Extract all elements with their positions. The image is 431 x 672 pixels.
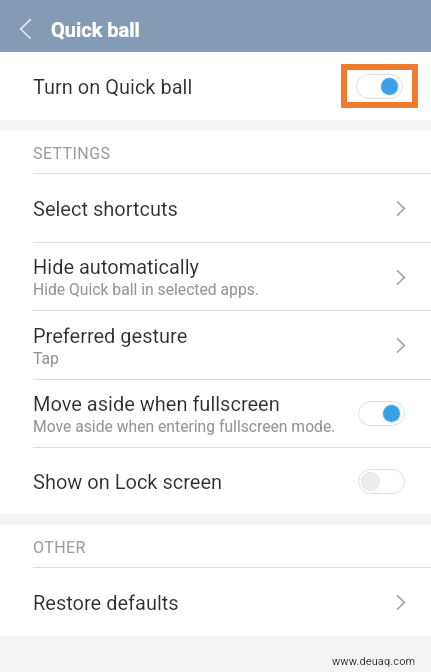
staticText: Tap: [33, 349, 59, 367]
button[interactable]: Toggle on: [356, 74, 403, 99]
staticText: Turn on Quick ball: [33, 75, 341, 98]
button[interactable]: Select shortcuts: [0, 174, 431, 242]
staticText: Preferred gesture: [33, 324, 188, 347]
button[interactable]: Show on Lock screen: [0, 448, 431, 514]
staticText: Move aside when entering fullscreen mode…: [33, 417, 336, 435]
button[interactable]: Move aside when fullscreen: [0, 380, 431, 447]
button[interactable]: Hide automatically: [0, 243, 431, 310]
button[interactable]: Turn on Quick ball: [0, 52, 431, 120]
button[interactable]: Restore defaults: [0, 568, 431, 636]
staticText: Hide automatically: [33, 255, 199, 278]
staticText: Restore defaults: [33, 591, 179, 614]
staticText: Show on Lock screen: [33, 470, 223, 493]
staticText: Quick ball: [51, 18, 140, 41]
button[interactable]: Toggle off: [358, 469, 405, 494]
button[interactable]: Preferred gesture: [0, 311, 431, 379]
button[interactable]: Toggle on: [358, 401, 405, 426]
staticText: Select shortcuts: [33, 197, 178, 220]
staticText: OTHER: [33, 538, 86, 557]
staticText: SETTINGS: [33, 144, 111, 163]
staticText: Move aside when fullscreen: [33, 392, 280, 415]
staticText: www.deuaq.com: [332, 655, 416, 668]
staticText: Hide Quick ball in selected apps.: [33, 280, 259, 298]
button[interactable]: Back: [0, 0, 51, 52]
